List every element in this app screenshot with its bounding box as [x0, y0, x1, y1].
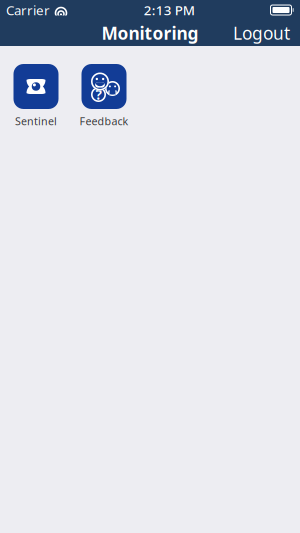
staticText: Carrier [6, 1, 50, 19]
staticText: ? [95, 86, 101, 103]
button[interactable]: Logout [225, 16, 298, 49]
staticText: Logout [233, 21, 290, 44]
button[interactable]: ? [70, 64, 138, 128]
staticText: 2:13 PM [144, 1, 195, 19]
staticText: Sentinel [15, 114, 57, 128]
button[interactable]: Sentinel [2, 64, 70, 128]
staticText: Monitoring [101, 21, 198, 44]
staticText: Feedback [79, 114, 128, 128]
